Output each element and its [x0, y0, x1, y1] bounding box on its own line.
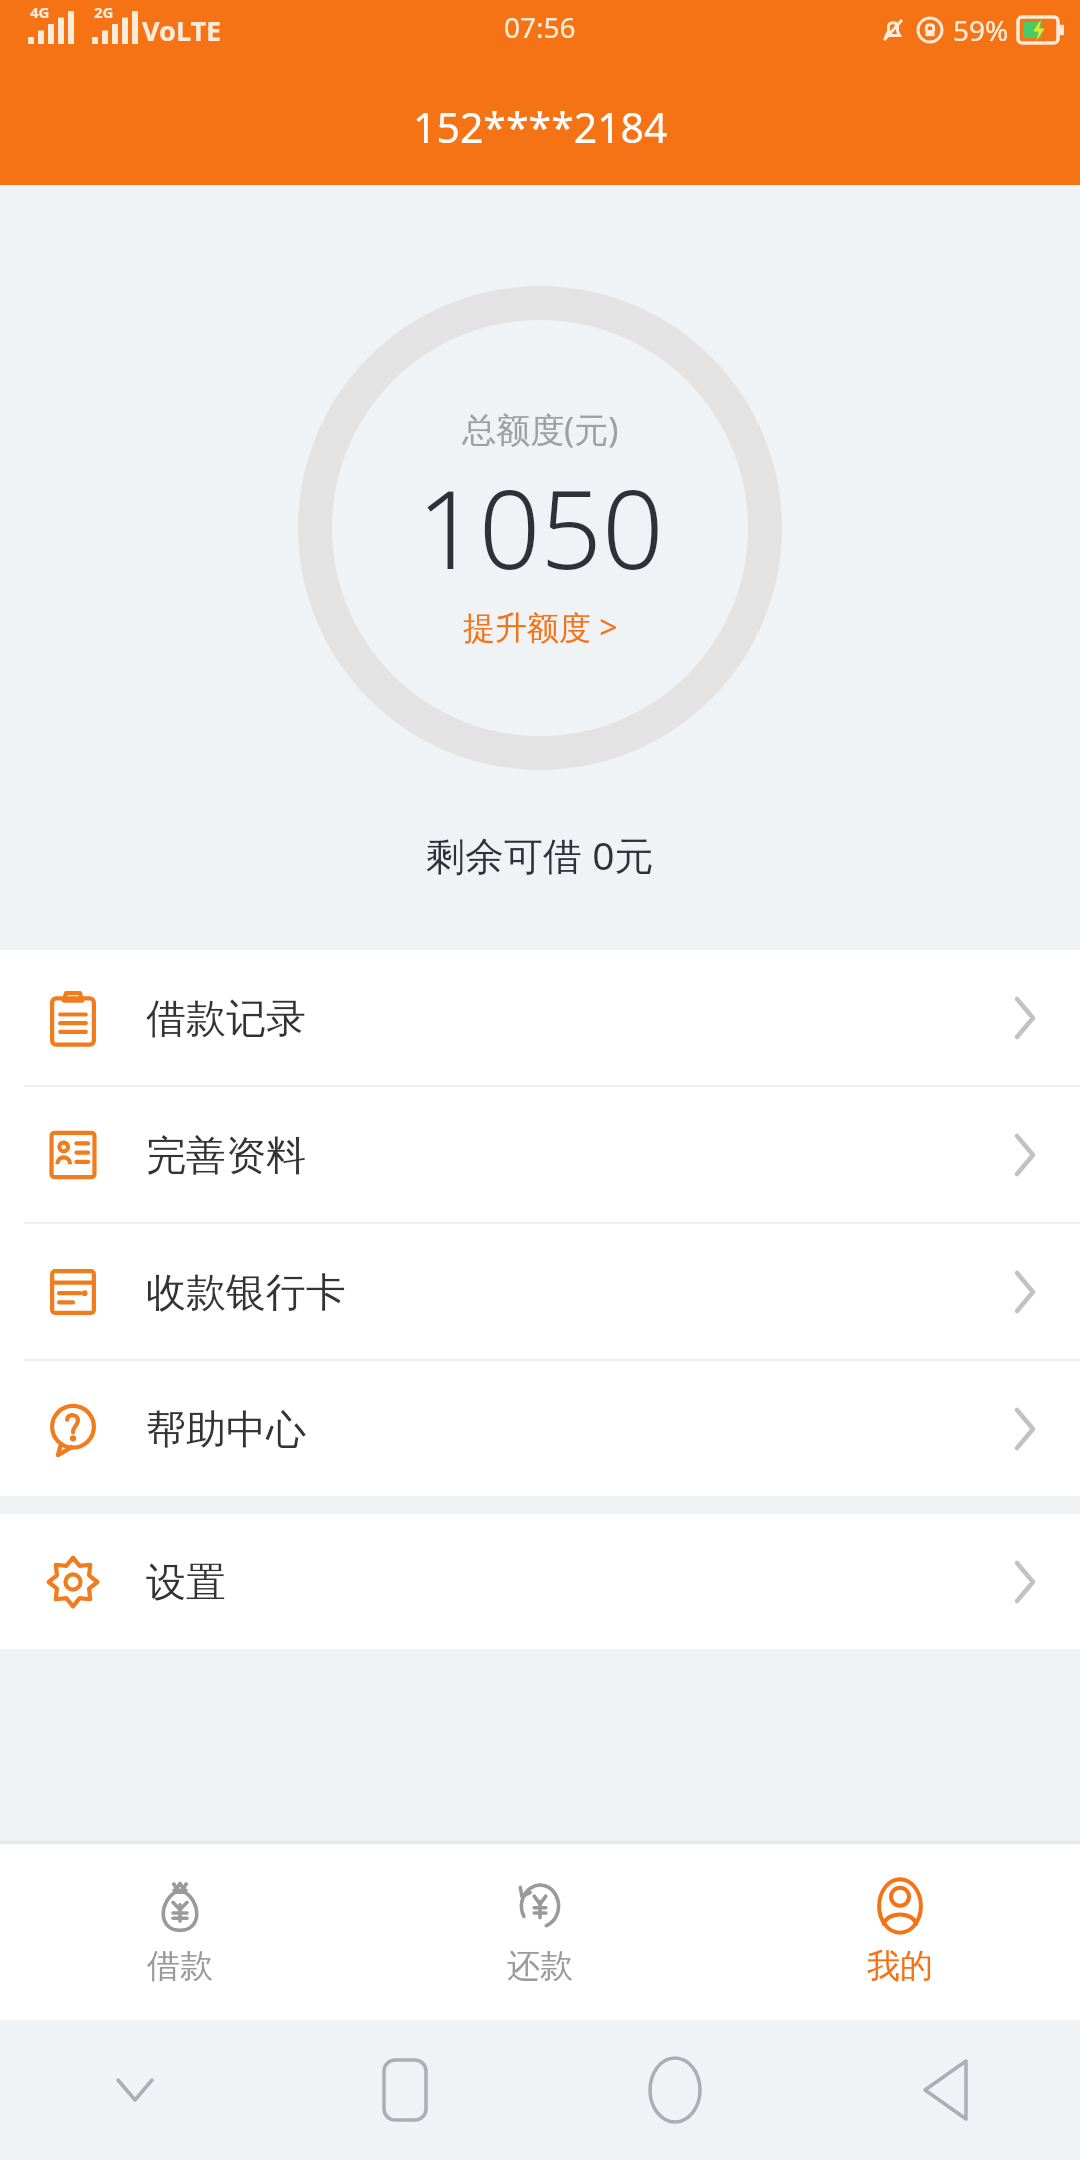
staticText: 07:56 — [504, 8, 576, 46]
staticText: 2G — [94, 2, 114, 22]
staticText: 借款记录 — [146, 993, 306, 1043]
button[interactable]: 提升额度 > — [457, 603, 624, 651]
staticText: 剩余可借 0元 — [426, 828, 654, 881]
staticText: 1050 — [417, 454, 664, 601]
staticText: 设置 — [146, 1557, 226, 1607]
staticText: 还款 — [507, 1945, 573, 1987]
button[interactable]: 借款 — [0, 1844, 360, 2020]
staticText: VoLTE — [142, 12, 222, 49]
button[interactable]: 我的 — [720, 1844, 1080, 2020]
staticText: 59% — [953, 11, 1009, 49]
staticText: 总额度(元) — [462, 406, 619, 452]
staticText: 4G — [30, 2, 50, 22]
button[interactable]: 设置 — [0, 1514, 1080, 1649]
staticText: 收款银行卡 — [146, 1267, 346, 1317]
button[interactable]: 收款银行卡 — [0, 1224, 1080, 1361]
staticText: 提升额度 > — [463, 605, 618, 649]
staticText: 完善资料 — [146, 1130, 306, 1180]
button[interactable]: 借款记录 — [0, 950, 1080, 1087]
staticText: 我的 — [867, 1945, 933, 1987]
button[interactable]: Recent apps — [382, 2058, 428, 2122]
button[interactable]: Home — [648, 2056, 702, 2124]
staticText: 帮助中心 — [146, 1404, 306, 1454]
button[interactable]: Hide navigation bar — [116, 2078, 154, 2102]
button[interactable]: 还款 — [360, 1844, 720, 2020]
staticText: 借款 — [147, 1945, 213, 1987]
button[interactable]: 帮助中心 — [0, 1361, 1080, 1496]
staticText: 152****2184 — [413, 99, 668, 155]
button[interactable]: 完善资料 — [0, 1087, 1080, 1224]
button[interactable]: Back — [921, 2058, 969, 2122]
